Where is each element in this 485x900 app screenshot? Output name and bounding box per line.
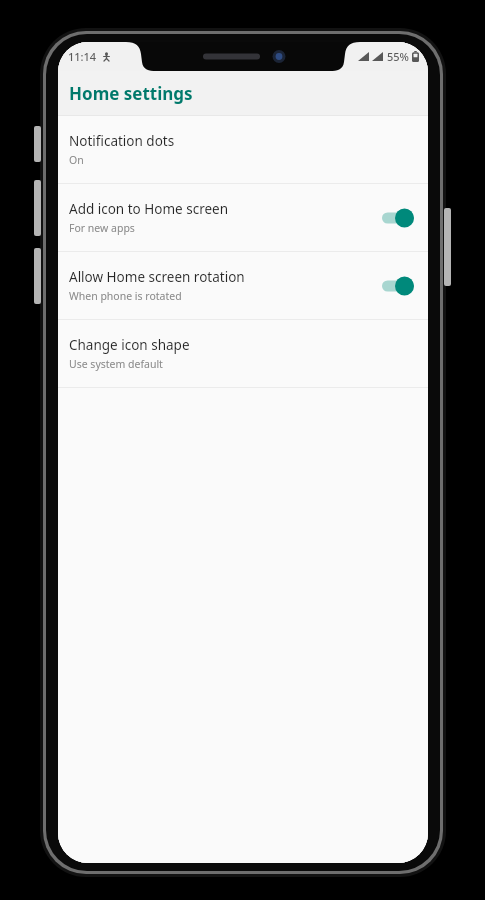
staticText: On	[69, 153, 84, 167]
button[interactable]: Add icon to Home screen	[58, 184, 428, 251]
staticText: Use system default	[69, 357, 163, 371]
staticText: 11:14	[68, 49, 97, 64]
button[interactable]: Allow Home screen rotation	[58, 252, 428, 319]
staticText: Add icon to Home screen	[69, 200, 229, 218]
staticText: Allow Home screen rotation	[69, 268, 245, 286]
button[interactable]: Notification dots	[58, 116, 428, 183]
button[interactable]: Toggle Allow Home screen rotation	[380, 273, 416, 299]
staticText: Home settings	[69, 82, 193, 105]
staticText: Notification dots	[69, 132, 175, 150]
staticText: 55%	[387, 49, 409, 64]
staticText: For new apps	[69, 221, 135, 235]
button[interactable]: Change icon shape	[58, 320, 428, 387]
button[interactable]: Toggle Add icon to Home screen	[380, 205, 416, 231]
staticText: When phone is rotated	[69, 289, 182, 303]
staticText: Change icon shape	[69, 336, 190, 354]
